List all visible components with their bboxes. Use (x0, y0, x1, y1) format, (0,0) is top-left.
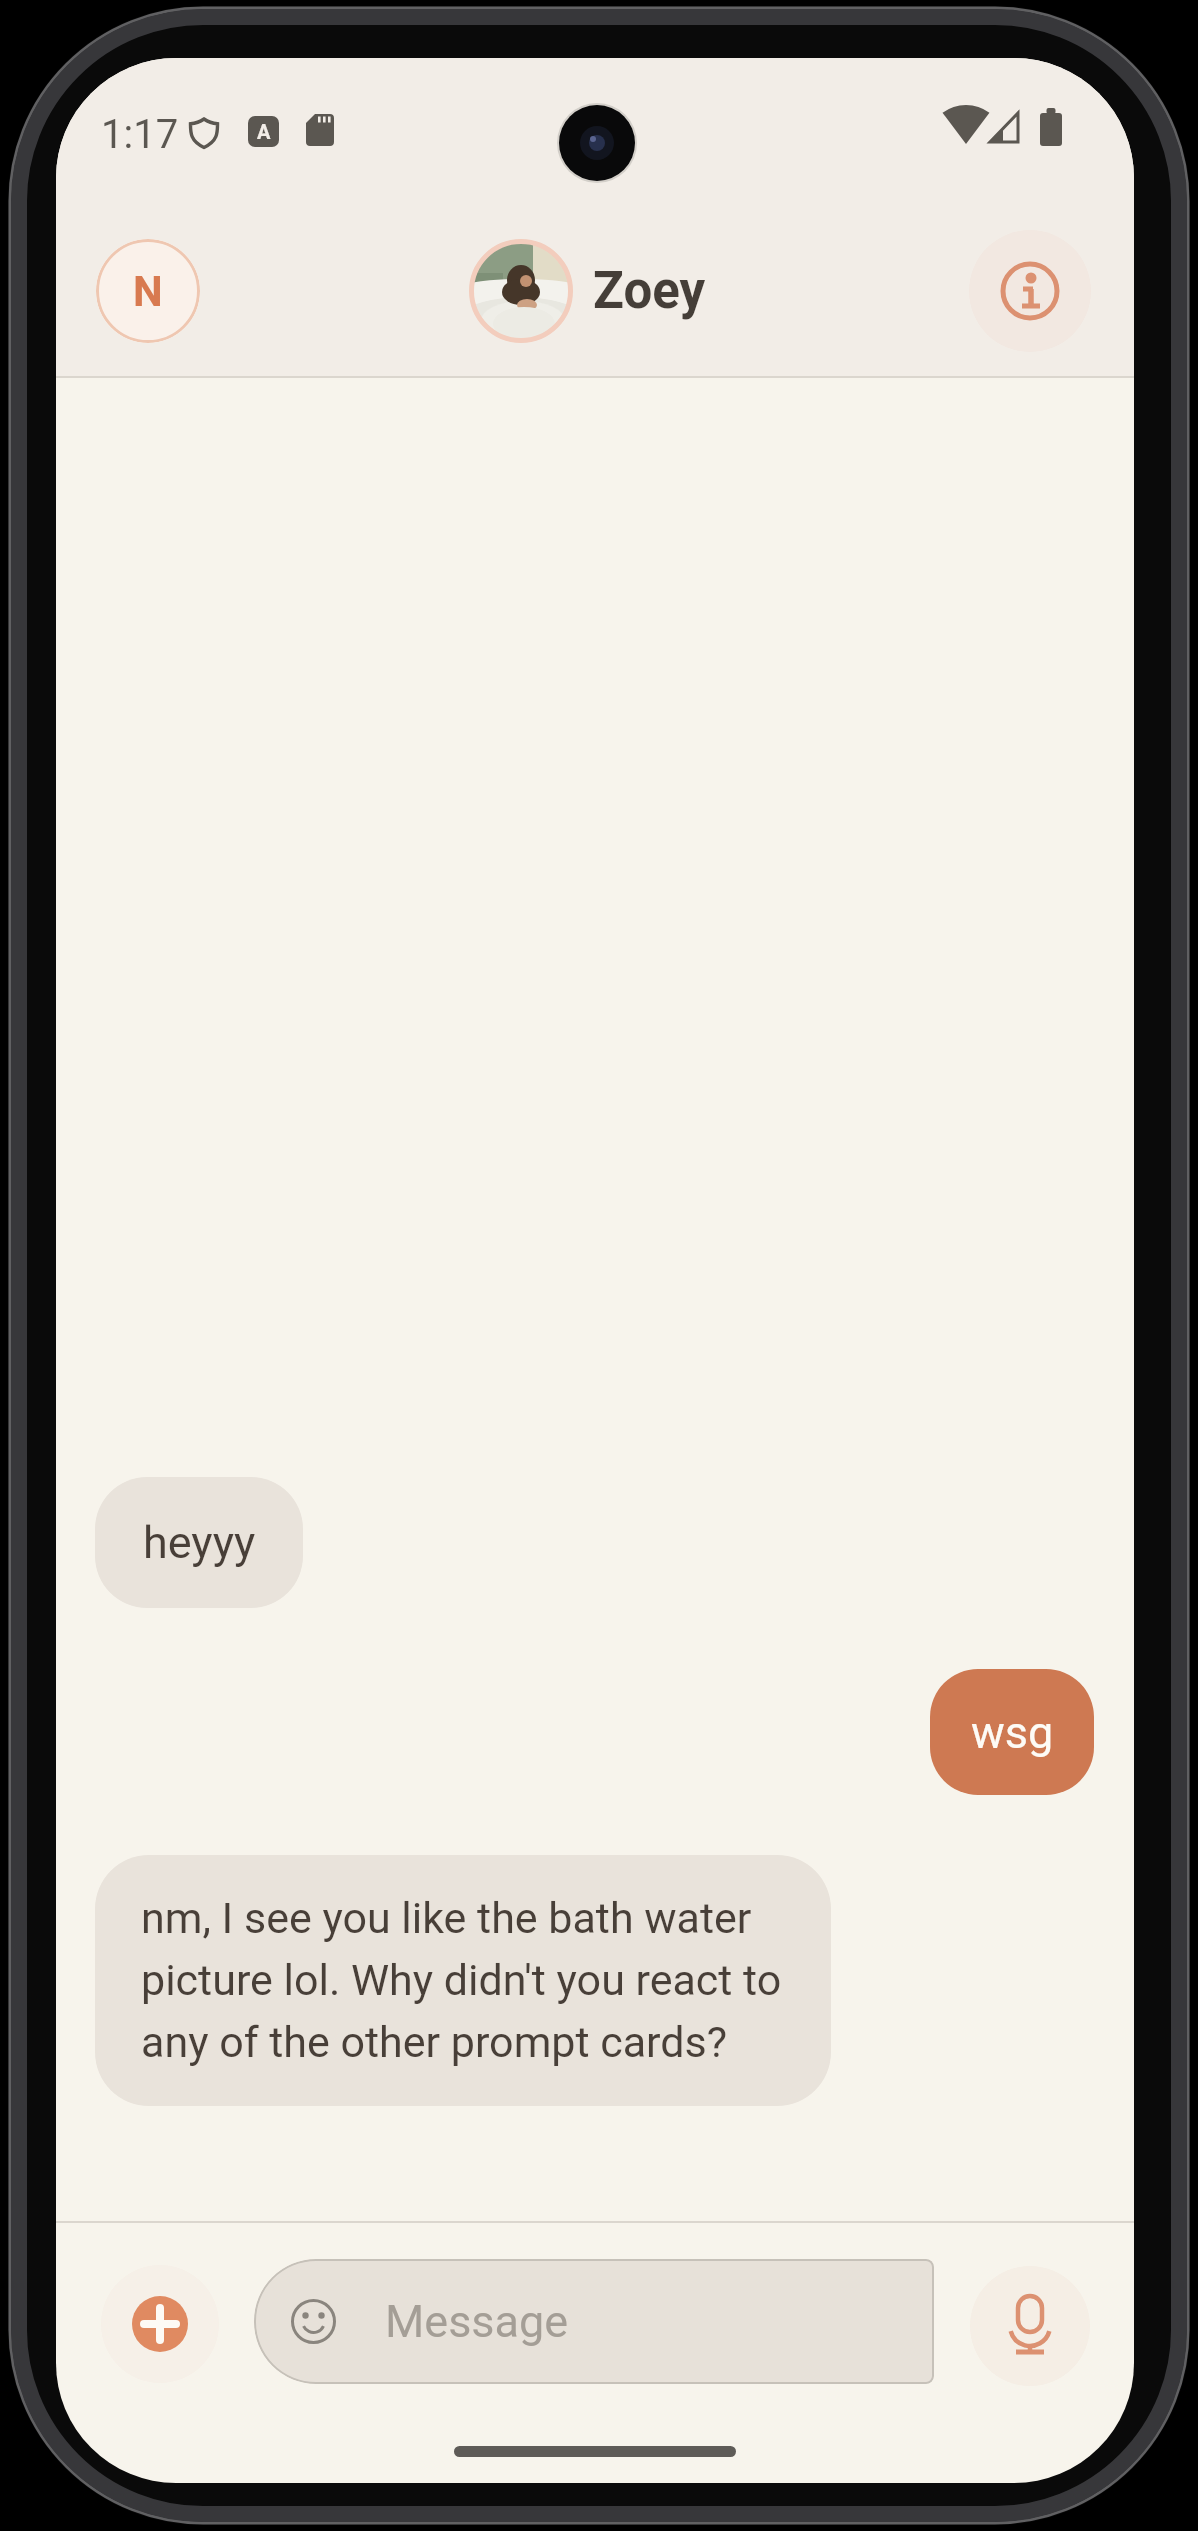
staticText: 1:17 (101, 111, 179, 158)
staticText: A (257, 120, 271, 143)
staticText: wsg (971, 1706, 1054, 1759)
button[interactable] (469, 239, 573, 343)
button[interactable]: N (96, 239, 200, 343)
staticText: Zoey (593, 261, 706, 321)
staticText: heyyy (143, 1516, 256, 1569)
button[interactable] (132, 2296, 188, 2352)
staticText: Message (385, 2295, 569, 2348)
button[interactable]: Message (254, 2259, 934, 2384)
button[interactable] (970, 2266, 1090, 2386)
staticText: N (133, 267, 163, 316)
button[interactable] (969, 230, 1091, 352)
staticText: nm, I see you like the bath water pictur… (141, 1893, 782, 2068)
